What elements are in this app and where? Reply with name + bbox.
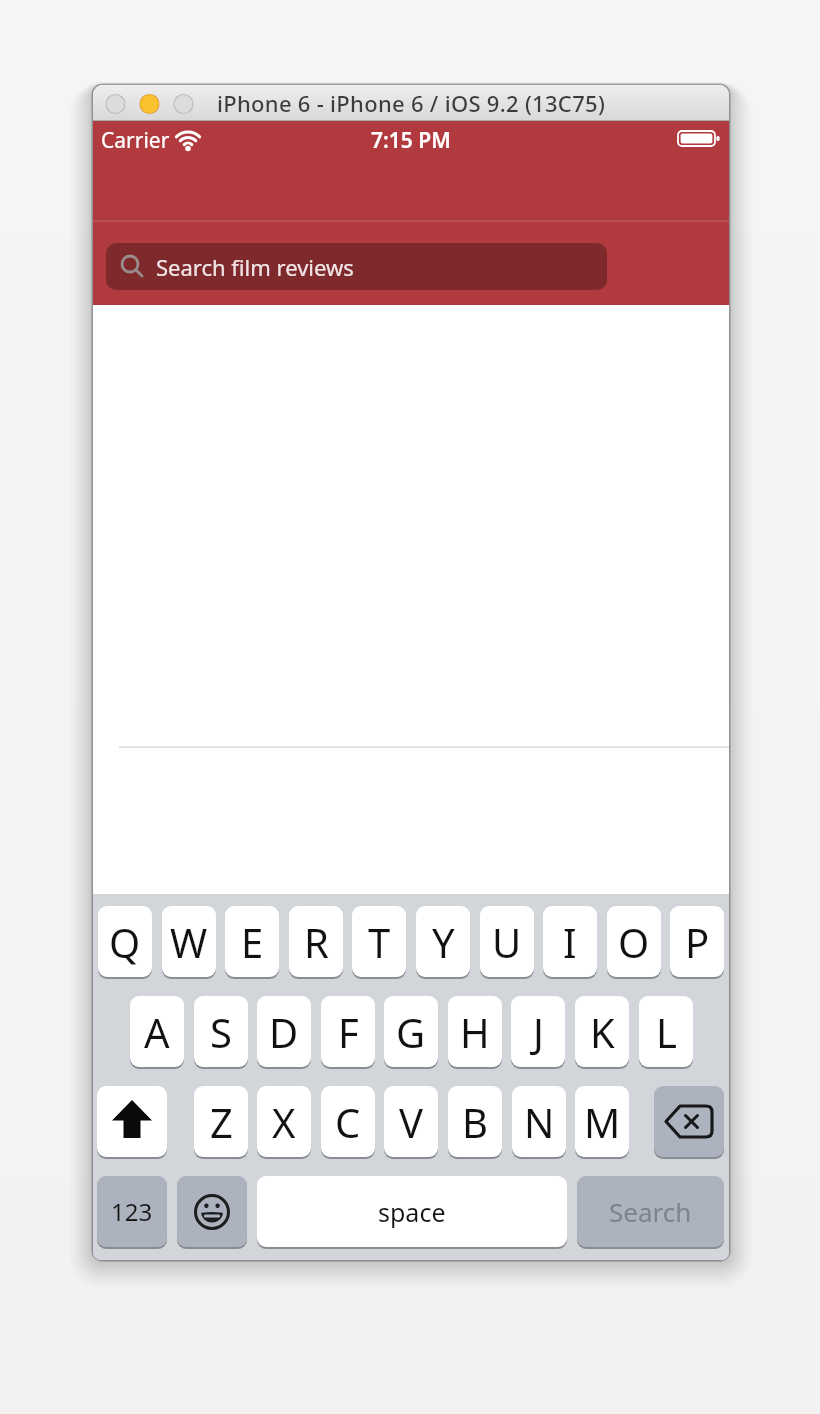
button[interactable] bbox=[654, 1086, 724, 1157]
button[interactable] bbox=[177, 1176, 247, 1247]
button[interactable]: N bbox=[512, 1086, 566, 1157]
button[interactable]: P bbox=[670, 906, 724, 977]
button[interactable]: J bbox=[511, 996, 565, 1067]
staticText: Carrier bbox=[101, 126, 170, 155]
staticText: V bbox=[399, 1095, 423, 1149]
button[interactable]: V bbox=[384, 1086, 438, 1157]
button[interactable]: I bbox=[543, 906, 597, 977]
button[interactable]: F bbox=[321, 996, 375, 1067]
staticText: A bbox=[144, 1005, 170, 1059]
button[interactable]: L bbox=[639, 996, 693, 1067]
staticText: E bbox=[241, 915, 264, 969]
staticText: iPhone 6 - iPhone 6 / iOS 9.2 (13C75) bbox=[217, 88, 606, 118]
button[interactable]: D bbox=[257, 996, 311, 1067]
button[interactable]: E bbox=[225, 906, 279, 977]
button[interactable]: 123 bbox=[97, 1176, 167, 1247]
button[interactable]: Z bbox=[194, 1086, 248, 1157]
staticText: L bbox=[656, 1005, 677, 1059]
staticText: B bbox=[462, 1095, 488, 1149]
button[interactable]: M bbox=[575, 1086, 629, 1157]
button[interactable]: Y bbox=[416, 906, 470, 977]
button[interactable] bbox=[97, 1086, 167, 1157]
button[interactable]: X bbox=[257, 1086, 311, 1157]
staticText: T bbox=[368, 915, 391, 969]
button[interactable]: H bbox=[448, 996, 502, 1067]
staticText: 123 bbox=[111, 1195, 153, 1228]
staticText: G bbox=[396, 1005, 426, 1059]
button[interactable]: O bbox=[607, 906, 661, 977]
button[interactable]: B bbox=[448, 1086, 502, 1157]
button[interactable]: T bbox=[352, 906, 406, 977]
staticText: R bbox=[304, 915, 329, 969]
staticText: K bbox=[590, 1005, 615, 1059]
staticText: X bbox=[272, 1095, 296, 1149]
button[interactable]: W bbox=[162, 906, 216, 977]
staticText: M bbox=[584, 1095, 621, 1149]
staticText: I bbox=[563, 915, 577, 969]
staticText: H bbox=[460, 1005, 490, 1059]
staticText: Y bbox=[432, 915, 455, 969]
staticText: 7:15 PM bbox=[371, 126, 451, 155]
button[interactable]: G bbox=[384, 996, 438, 1067]
staticText: Search film reviews bbox=[156, 252, 354, 282]
staticText: J bbox=[533, 1005, 544, 1059]
button[interactable]: C bbox=[321, 1086, 375, 1157]
staticText: U bbox=[492, 915, 522, 969]
staticText: S bbox=[210, 1005, 232, 1059]
staticText: C bbox=[335, 1095, 361, 1149]
staticText: P bbox=[685, 915, 710, 969]
staticText: Search bbox=[609, 1194, 692, 1229]
staticText: space bbox=[378, 1195, 446, 1229]
staticText: Q bbox=[109, 915, 141, 969]
button[interactable]: K bbox=[575, 996, 629, 1067]
staticText: D bbox=[269, 1005, 299, 1059]
button[interactable]: Q bbox=[98, 906, 152, 977]
button[interactable]: Search film reviews bbox=[106, 243, 607, 290]
staticText: N bbox=[524, 1095, 555, 1149]
staticText: Z bbox=[210, 1095, 233, 1149]
button[interactable]: space bbox=[257, 1176, 567, 1247]
button[interactable]: U bbox=[480, 906, 534, 977]
staticText: F bbox=[338, 1005, 359, 1059]
button[interactable]: Search bbox=[577, 1176, 724, 1247]
button[interactable]: S bbox=[194, 996, 248, 1067]
staticText: W bbox=[170, 915, 208, 969]
button[interactable]: A bbox=[130, 996, 184, 1067]
button[interactable]: R bbox=[289, 906, 343, 977]
staticText: O bbox=[618, 915, 650, 969]
